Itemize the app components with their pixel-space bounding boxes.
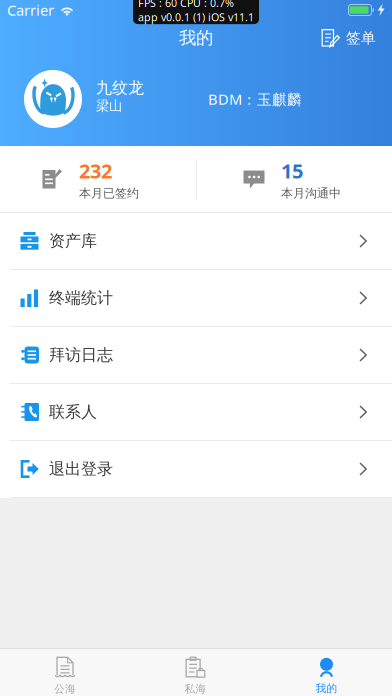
button[interactable]: 15 — [197, 146, 392, 212]
button[interactable]: 公海 — [0, 649, 130, 696]
staticText: 私海 — [184, 682, 206, 695]
staticText: app v0.0.1 (1) iOS v11.1 — [138, 10, 254, 24]
staticText: Carrier — [7, 0, 54, 20]
staticText: 本月已签约 — [79, 186, 139, 201]
button[interactable]: 私海 — [130, 649, 261, 696]
staticText: 资产库 — [49, 231, 97, 251]
button[interactable]: 拜访日志 — [0, 327, 392, 384]
staticText: 梁山 — [96, 98, 122, 114]
staticText: 232 — [79, 157, 112, 184]
staticText: 本月沟通中 — [281, 186, 341, 201]
button[interactable]: 签单 — [313, 25, 384, 50]
button[interactable]: 我的 — [261, 649, 392, 696]
staticText: 终端统计 — [49, 288, 113, 308]
button[interactable]: 232 — [0, 146, 196, 212]
staticText: 我的 — [179, 27, 213, 49]
staticText: BDM：玉麒麟 — [208, 89, 302, 109]
staticText: 15 — [281, 157, 303, 184]
staticText: 九纹龙 — [96, 78, 144, 98]
button[interactable]: 资产库 — [0, 213, 392, 270]
staticText: 公海 — [54, 682, 76, 695]
staticText: 我的 — [315, 682, 337, 695]
staticText: 签单 — [346, 29, 376, 47]
staticText: 拜访日志 — [49, 345, 113, 365]
staticText: 联系人 — [49, 402, 97, 422]
button[interactable]: 退出登录 — [0, 441, 392, 498]
staticText: FPS : 60 CPU : 0.7% — [138, 0, 234, 10]
button[interactable]: 联系人 — [0, 384, 392, 441]
button[interactable]: 终端统计 — [0, 270, 392, 327]
staticText: 退出登录 — [49, 459, 113, 479]
